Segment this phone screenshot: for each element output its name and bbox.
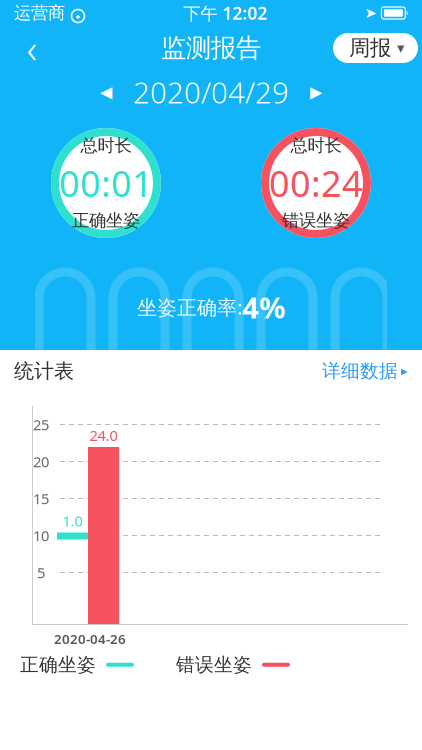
button[interactable]: 返回 [8, 26, 56, 70]
staticText: 10 [33, 526, 49, 545]
staticText: 15 [33, 489, 49, 508]
staticText: 总时长 [290, 135, 341, 156]
staticText: 坐姿正确率: [137, 294, 242, 320]
button[interactable]: 上一周 [93, 77, 119, 107]
staticText: 00:01 [59, 159, 153, 207]
staticText: 2020/04/29 [133, 72, 289, 111]
button[interactable]: 详细数据 [312, 353, 408, 388]
staticText: 1.0 [62, 511, 82, 530]
staticText: 正确坐姿 [72, 210, 140, 231]
staticText: ◀ [100, 83, 112, 101]
staticText: 24.0 [89, 425, 117, 445]
staticText: 运营商 [14, 2, 65, 24]
staticText: 统计表 [14, 359, 74, 383]
staticText: 25 [33, 415, 49, 434]
staticText: 正确坐姿 [20, 653, 96, 676]
staticText: ▾ [397, 40, 404, 56]
staticText: 20 [33, 452, 49, 471]
staticText: ▶ [310, 83, 322, 101]
button[interactable]: 周报 [333, 33, 414, 63]
staticText: 监测报告 [161, 32, 261, 63]
staticText: ➤ [364, 5, 376, 21]
staticText: 下午 12:02 [183, 1, 267, 24]
staticText: 2020-04-26 [54, 630, 126, 648]
staticText: 00:24 [269, 159, 363, 207]
staticText: 周报 [349, 35, 391, 61]
staticText: 详细数据 [322, 359, 398, 382]
staticText: 错误坐姿 [176, 653, 252, 676]
staticText: ▸ [401, 363, 408, 378]
button[interactable]: 下一周 [303, 77, 329, 107]
staticText: 错误坐姿 [282, 210, 350, 231]
staticText: 5 [37, 563, 45, 582]
staticText: 总时长 [80, 135, 131, 156]
staticText: ‹ [26, 21, 37, 74]
staticText: 4% [242, 287, 285, 326]
